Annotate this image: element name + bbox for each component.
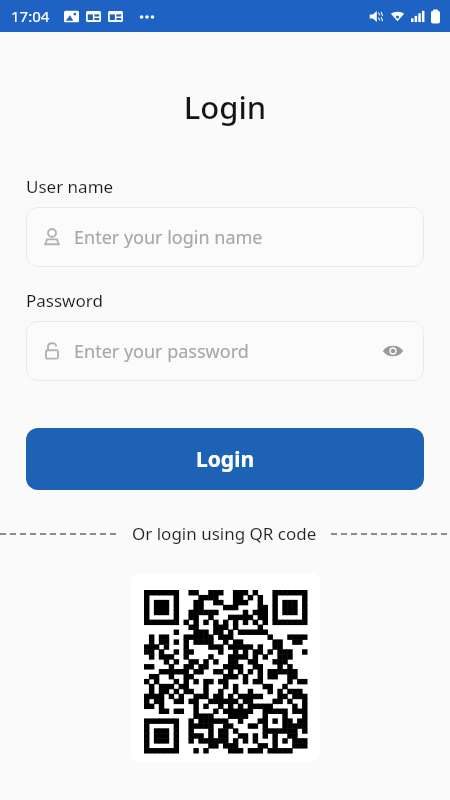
staticText: 17:04	[11, 6, 50, 26]
staticText: Password	[26, 289, 103, 312]
staticText: Login	[196, 445, 255, 474]
staticText: Enter your password	[74, 339, 249, 364]
button[interactable]: Login	[26, 428, 424, 490]
button[interactable]: Show password	[378, 336, 408, 366]
staticText: Login	[0, 86, 450, 128]
button[interactable]: Enter your password	[26, 321, 424, 381]
staticText: User name	[26, 175, 114, 198]
button[interactable]: Enter your login name	[26, 207, 424, 267]
button[interactable]: QR code login	[131, 573, 320, 762]
staticText: Or login using QR code	[132, 522, 317, 545]
staticText: Enter your login name	[74, 225, 263, 250]
